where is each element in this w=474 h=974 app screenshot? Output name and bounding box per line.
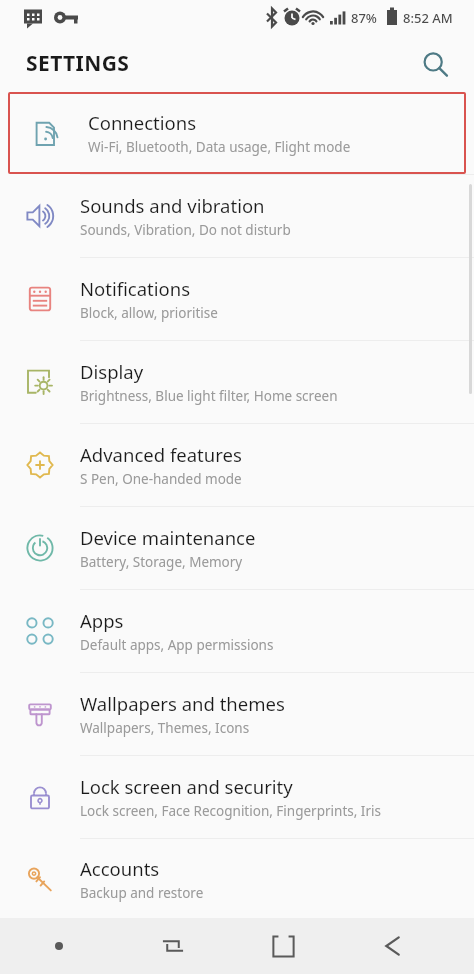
button[interactable]: Sounds and vibration (0, 175, 474, 257)
staticText: Connections (88, 110, 197, 135)
button[interactable]: Search (412, 41, 458, 87)
staticText: Brightness, Blue light filter, Home scre… (80, 387, 338, 405)
button[interactable]: Accounts (0, 839, 474, 918)
staticText: Lock screen and security (80, 774, 293, 799)
staticText: Notifications (80, 276, 191, 301)
staticText: Apps (80, 608, 124, 633)
button[interactable]: Back (338, 918, 448, 974)
button[interactable]: Apps (0, 590, 474, 672)
staticText: Device maintenance (80, 525, 256, 550)
staticText: 8:52 AM (403, 9, 453, 27)
button[interactable]: Lock screen and security (0, 756, 474, 838)
staticText: 87% (351, 9, 377, 27)
button[interactable]: Advanced features (0, 424, 474, 506)
staticText: Display (80, 359, 144, 384)
button[interactable]: Menu indicator (0, 918, 118, 974)
staticText: S Pen, One-handed mode (80, 470, 242, 488)
staticText: Sounds, Vibration, Do not disturb (80, 221, 291, 239)
staticText: Wallpapers and themes (80, 691, 285, 716)
staticText: Default apps, App permissions (80, 636, 274, 654)
staticText: Advanced features (80, 442, 242, 467)
button[interactable]: Wallpapers and themes (0, 673, 474, 755)
button[interactable]: Home (228, 918, 338, 974)
staticText: Wallpapers, Themes, Icons (80, 719, 250, 737)
button[interactable]: Notifications (0, 258, 474, 340)
staticText: Accounts (80, 856, 160, 881)
staticText: Lock screen, Face Recognition, Fingerpri… (80, 802, 381, 820)
staticText: Block, allow, prioritise (80, 304, 218, 322)
staticText: Backup and restore (80, 884, 204, 902)
staticText: Sounds and vibration (80, 193, 265, 218)
button[interactable]: Recent apps (118, 918, 228, 974)
staticText: SETTINGS (26, 49, 130, 78)
button[interactable]: Device maintenance (0, 507, 474, 589)
button[interactable]: Display (0, 341, 474, 423)
button[interactable]: Connections (8, 92, 466, 174)
staticText: Wi-Fi, Bluetooth, Data usage, Flight mod… (88, 138, 351, 156)
staticText: Battery, Storage, Memory (80, 553, 243, 571)
